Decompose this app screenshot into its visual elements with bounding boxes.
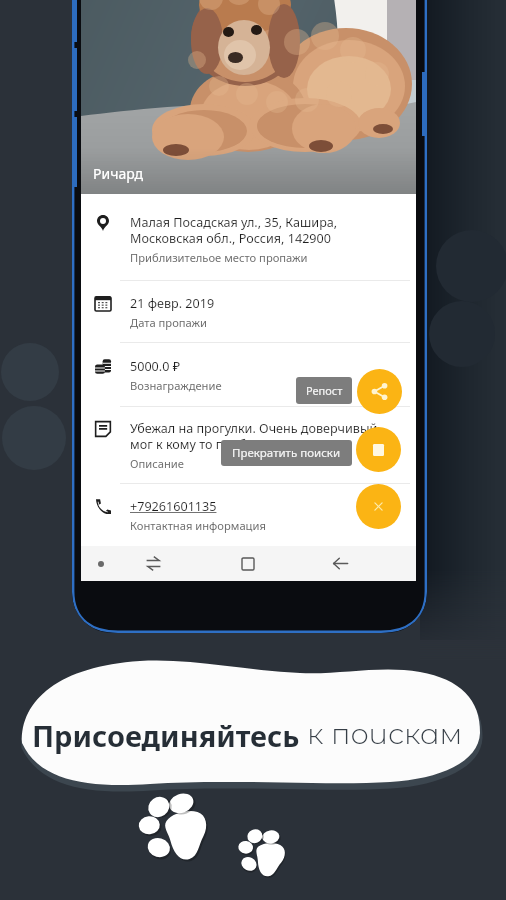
button[interactable]: 5000.0 ₽	[81, 343, 416, 406]
staticText: Описание	[130, 456, 184, 471]
staticText: Убежал на прогулки. Очень доверчивый мог…	[130, 420, 378, 453]
staticText: Ричард	[93, 164, 144, 183]
staticText: +79261601135	[130, 498, 217, 515]
button[interactable]: Share	[357, 369, 402, 414]
button[interactable]: Stop search	[356, 427, 401, 472]
staticText: Вознаграждение	[130, 378, 222, 393]
button[interactable]: Recent apps	[139, 546, 167, 581]
staticText: Малая Посадская ул., 35, Кашира, Московс…	[130, 214, 338, 247]
staticText: Дата пропажи	[130, 315, 208, 330]
button[interactable]: Back	[326, 546, 354, 581]
staticText: Присоединяйтесь	[32, 716, 300, 755]
button[interactable]: Home	[234, 546, 262, 581]
staticText: Репост	[306, 383, 343, 398]
button[interactable]: Assistant	[87, 546, 115, 581]
button[interactable]: Убежал на прогулки. Очень доверчивый мог…	[81, 407, 416, 483]
button[interactable]: +79261601135	[81, 484, 416, 544]
button[interactable]: Close	[356, 484, 401, 529]
staticText: 5000.0 ₽	[130, 358, 180, 375]
staticText: Приблизительое место пропажи	[130, 250, 308, 265]
staticText: Контактная информация	[130, 518, 266, 533]
staticText: Прекратить поиски	[232, 445, 341, 461]
button[interactable]: 21 февр. 2019	[81, 281, 416, 342]
button[interactable]: Малая Посадская ул., 35, Кашира, Московс…	[81, 194, 416, 280]
staticText: 21 февр. 2019	[130, 295, 215, 312]
staticText: к поискам	[307, 716, 463, 751]
